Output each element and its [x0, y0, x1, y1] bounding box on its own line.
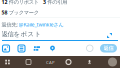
staticText: CAP	[46, 59, 55, 65]
staticText: @Kaile_twinkleさん	[18, 21, 63, 28]
staticText: 58	[1, 9, 7, 16]
staticText: 返信	[103, 45, 113, 52]
staticText: ブックマーク	[9, 9, 39, 16]
staticText: 3	[43, 0, 46, 6]
staticText: 返信をポスト	[1, 30, 41, 38]
staticText: 返信先:	[1, 21, 17, 28]
staticText: 12	[1, 0, 7, 6]
staticText: 件のリポスト	[9, 0, 39, 5]
staticText: 件の引用	[47, 0, 67, 5]
